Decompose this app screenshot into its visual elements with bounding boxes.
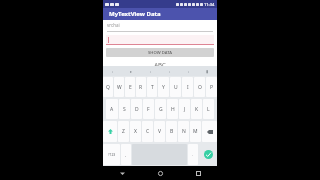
staticText: Z <box>122 128 125 135</box>
button[interactable]: H <box>167 99 178 119</box>
button[interactable]: J <box>179 99 190 119</box>
button[interactable]: Recents <box>179 166 217 180</box>
button[interactable]: Q <box>103 77 113 97</box>
button[interactable]: U <box>170 77 181 97</box>
staticText: , <box>125 152 127 157</box>
staticText: N <box>182 128 186 135</box>
staticText: R <box>139 84 143 91</box>
button[interactable]: I <box>182 77 193 97</box>
staticText: W <box>117 84 122 91</box>
staticText: 11:34 <box>204 2 215 7</box>
staticText: K <box>195 106 199 113</box>
staticText: ‹ <box>150 69 152 74</box>
staticText: vrchai <box>107 22 120 28</box>
button[interactable]: Back <box>103 166 141 180</box>
staticText: L <box>207 106 210 113</box>
button[interactable]: SHOW DATA <box>106 48 214 57</box>
button[interactable]: K <box>191 99 202 119</box>
staticText: P <box>210 84 214 91</box>
staticText: C <box>146 128 150 135</box>
staticText: ABC <box>103 61 217 66</box>
staticText: X <box>134 128 137 135</box>
staticText: ‹ <box>188 69 190 74</box>
button[interactable]: C <box>142 121 153 142</box>
button[interactable]: W <box>114 77 124 97</box>
button[interactable]: Z <box>118 121 129 142</box>
staticText: . <box>192 152 194 157</box>
button[interactable]: E <box>125 77 135 97</box>
button[interactable]: A <box>106 99 118 119</box>
button[interactable]: Backspace <box>202 121 217 142</box>
button[interactable]: V <box>154 121 165 142</box>
button[interactable]: Home <box>141 166 179 180</box>
button[interactable]: Y <box>158 77 169 97</box>
button[interactable]: D <box>131 99 142 119</box>
button[interactable]: Enter <box>204 150 213 159</box>
staticText: G <box>159 106 163 113</box>
staticText: U <box>174 84 178 91</box>
button[interactable]: Shift <box>103 121 117 142</box>
staticText: › <box>169 69 171 74</box>
staticText: T <box>151 84 154 91</box>
button[interactable]: vrchai <box>107 22 213 32</box>
button[interactable]: ▮ <box>198 66 217 76</box>
button[interactable]: ?123 <box>103 144 120 165</box>
button[interactable]: Comma <box>121 144 131 165</box>
staticText: ▸ <box>130 69 133 74</box>
button[interactable] <box>106 35 214 45</box>
button[interactable]: N <box>178 121 189 142</box>
staticText: M <box>193 128 198 135</box>
button[interactable]: S <box>119 99 130 119</box>
button[interactable]: G <box>155 99 166 119</box>
staticText: F <box>147 106 150 113</box>
button[interactable]: ▸ <box>122 66 141 76</box>
staticText: Y <box>162 84 165 91</box>
button[interactable]: P <box>206 77 217 97</box>
button[interactable]: O <box>194 77 205 97</box>
staticText: E <box>129 84 132 91</box>
staticText: Q <box>106 84 110 91</box>
staticText: ▮ <box>206 69 209 74</box>
staticText: SHOW DATA <box>148 50 172 56</box>
button[interactable]: T <box>147 77 157 97</box>
button[interactable]: F <box>143 99 154 119</box>
staticText: ?123 <box>108 152 116 157</box>
staticText: MyTextView Data <box>109 10 161 18</box>
staticText: S <box>123 106 126 113</box>
button[interactable]: M <box>190 121 201 142</box>
button[interactable]: X <box>130 121 141 142</box>
button[interactable]: B <box>166 121 177 142</box>
staticText: H <box>171 106 175 113</box>
staticText: A <box>110 106 114 113</box>
staticText: V <box>158 128 162 135</box>
staticText: I <box>187 84 189 91</box>
staticText: O <box>198 84 202 91</box>
staticText: J <box>184 106 186 113</box>
staticText: ‹ <box>112 69 114 74</box>
staticText: B <box>170 128 174 135</box>
staticText: D <box>135 106 139 113</box>
button[interactable]: L <box>203 99 214 119</box>
button[interactable]: R <box>136 77 146 97</box>
